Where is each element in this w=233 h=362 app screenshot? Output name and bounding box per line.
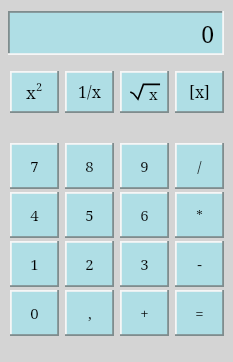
staticText: 1 (30, 254, 39, 274)
button[interactable]: 9 (120, 143, 169, 189)
staticText: 4 (30, 205, 39, 225)
button[interactable]: 2 (65, 241, 114, 287)
button[interactable]: 5 (65, 192, 114, 238)
staticText: * (196, 206, 203, 224)
staticText: 6 (140, 205, 149, 225)
staticText: 2 (85, 254, 94, 274)
staticText: 0 (201, 18, 214, 49)
button[interactable]: / (175, 143, 224, 189)
staticText: 3 (140, 254, 149, 274)
button[interactable]: 8 (65, 143, 114, 189)
button[interactable]: + (120, 290, 169, 336)
staticText: x (26, 81, 36, 104)
staticText: + (140, 303, 149, 323)
staticText: x (149, 84, 158, 104)
staticText: 2 (36, 79, 43, 94)
button[interactable]: 1 (10, 241, 59, 287)
staticText: = (195, 303, 204, 323)
button[interactable]: 6 (120, 192, 169, 238)
button[interactable]: 0 (10, 290, 59, 336)
button[interactable]: 1/x (65, 71, 114, 113)
staticText: , (88, 303, 92, 323)
staticText: / (197, 156, 202, 176)
button[interactable]: Display (8, 11, 224, 55)
staticText: 8 (85, 156, 94, 176)
staticText: [x] (189, 81, 210, 103)
button[interactable]: , (65, 290, 114, 336)
staticText: 7 (30, 156, 39, 176)
button[interactable]: 7 (10, 143, 59, 189)
button[interactable]: [x] (175, 71, 224, 113)
staticText: 1/x (78, 81, 101, 103)
button[interactable]: - (175, 241, 224, 287)
button[interactable]: * (175, 192, 224, 238)
button[interactable]: square root of x (120, 71, 169, 113)
staticText: 0 (30, 303, 39, 323)
staticText: 5 (85, 205, 94, 225)
staticText: - (197, 254, 202, 274)
button[interactable]: 3 (120, 241, 169, 287)
button[interactable]: = (175, 290, 224, 336)
staticText: 9 (140, 156, 149, 176)
button[interactable]: x squared (10, 71, 59, 113)
button[interactable]: 4 (10, 192, 59, 238)
